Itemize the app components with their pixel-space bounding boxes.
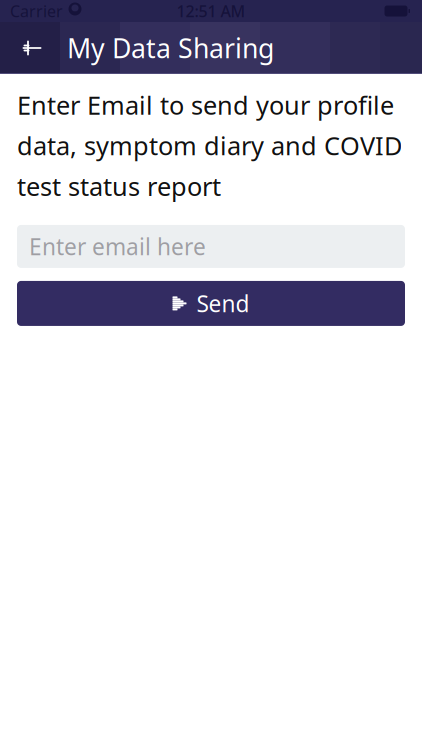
staticText: Enter Email to send your profile data, s…	[17, 88, 402, 203]
staticText: 12:51 AM	[176, 0, 245, 22]
button[interactable]: Enter email here	[17, 225, 405, 268]
staticText: Carrier	[10, 0, 63, 22]
button[interactable]: Send	[17, 281, 405, 326]
staticText: My Data Sharing	[67, 30, 274, 66]
staticText: Send	[196, 288, 249, 318]
button[interactable]: Back	[10, 22, 54, 74]
staticText: Enter email here	[29, 231, 206, 261]
